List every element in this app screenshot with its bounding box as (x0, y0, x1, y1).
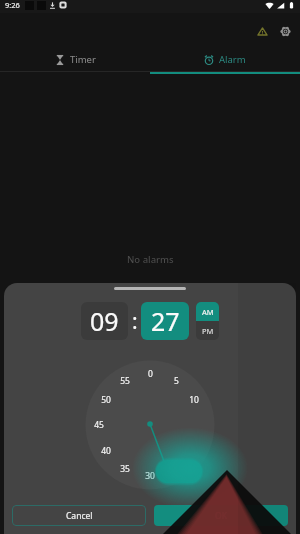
button[interactable]: OK (154, 505, 288, 526)
staticText: Timer (70, 53, 96, 66)
button[interactable]: 09 (81, 302, 128, 340)
button[interactable]: Settings (274, 20, 296, 42)
staticText: No alarms (127, 253, 174, 266)
staticText: 0 (148, 368, 153, 380)
staticText: 55 (120, 375, 130, 387)
staticText: AM (202, 307, 214, 317)
button[interactable]: Warning (251, 20, 273, 42)
staticText: 09 (90, 304, 119, 338)
staticText: 45 (94, 419, 104, 431)
staticText: Cancel (66, 510, 93, 522)
button[interactable]: Alarm (150, 48, 300, 71)
staticText: Alarm (219, 53, 246, 66)
staticText: 5 (174, 375, 179, 387)
button[interactable]: Cancel (12, 505, 146, 526)
button[interactable]: AM (196, 302, 219, 321)
staticText: 10 (189, 394, 199, 406)
staticText: 50 (101, 394, 111, 406)
staticText: 27 (151, 304, 180, 338)
button[interactable]: PM (196, 321, 219, 340)
staticText: 9:26 (5, 0, 20, 10)
staticText: 40 (101, 445, 111, 457)
staticText: : (132, 307, 138, 336)
button[interactable]: Timer (0, 48, 150, 71)
staticText: 30 (145, 470, 155, 482)
button[interactable]: 27 (141, 302, 189, 340)
staticText: PM (202, 326, 214, 336)
staticText: 35 (120, 463, 130, 475)
